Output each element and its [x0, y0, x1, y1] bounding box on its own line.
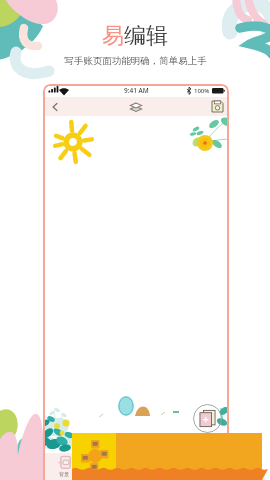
- staticText: 写手账页面功能明确，简单易上手: [64, 55, 207, 67]
- staticText: 9:41 AM: [124, 86, 149, 95]
- staticText: 100%: [194, 87, 210, 95]
- button[interactable]: Add page: [193, 404, 222, 433]
- button[interactable]: Layers: [128, 99, 144, 115]
- button[interactable]: Back: [47, 99, 63, 115]
- staticText: 易: [102, 22, 124, 50]
- button[interactable]: Save: [211, 100, 224, 113]
- staticText: 编辑: [124, 22, 168, 50]
- button[interactable]: 背景: [51, 455, 77, 477]
- staticText: 背景: [59, 471, 69, 477]
- button[interactable]: [72, 433, 262, 480]
